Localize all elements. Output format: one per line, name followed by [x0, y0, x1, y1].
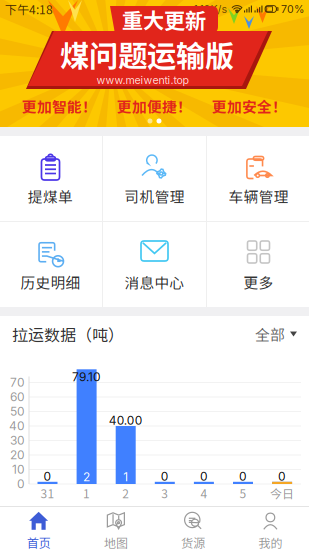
button[interactable]: 地图: [77, 506, 154, 550]
staticText: 40.00: [109, 413, 143, 428]
button[interactable]: 提煤单: [0, 136, 102, 221]
staticText: 31: [40, 484, 54, 502]
staticText: 4: [200, 484, 207, 502]
staticText: 全部: [255, 323, 285, 345]
staticText: 拉运数据（吨）: [12, 322, 124, 346]
staticText: 5: [239, 484, 246, 502]
button[interactable]: 我的: [232, 506, 309, 550]
staticText: 车辆管理: [228, 185, 288, 207]
button[interactable]: 历史明细: [0, 222, 102, 307]
staticText: 历史明细: [20, 271, 80, 293]
button[interactable]: 消息中心: [103, 222, 206, 307]
staticText: 3: [161, 484, 168, 502]
staticText: 我的: [258, 534, 282, 550]
staticText: 30: [10, 433, 25, 448]
staticText: 2: [83, 470, 90, 484]
button[interactable]: 更多: [207, 222, 309, 307]
staticText: 40: [9, 419, 25, 433]
staticText: 更加安全！: [212, 95, 287, 117]
staticText: 0: [43, 469, 51, 483]
staticText: 煤问题运输版: [60, 33, 234, 75]
staticText: 1: [83, 484, 90, 502]
staticText: 消息中心: [124, 271, 184, 293]
staticText: 重大更新: [122, 4, 206, 35]
staticText: 79.10: [72, 370, 101, 384]
staticText: 0: [161, 469, 169, 483]
staticText: 货源: [181, 534, 205, 550]
button[interactable]: 司机管理: [103, 136, 206, 221]
staticText: 20: [10, 448, 25, 462]
staticText: 司机管理: [124, 185, 184, 207]
staticText: 70: [10, 375, 25, 390]
staticText: 0: [17, 477, 25, 491]
staticText: 10: [12, 462, 25, 477]
staticText: 2: [122, 484, 129, 502]
staticText: 70%: [281, 2, 304, 15]
staticText: 下午4:18: [5, 0, 53, 18]
staticText: 今日: [270, 484, 294, 502]
staticText: 更加便捷！: [117, 95, 192, 117]
staticText: 0: [200, 469, 208, 483]
button[interactable]: 车辆管理: [207, 136, 309, 221]
button[interactable]: 全部: [255, 315, 297, 353]
staticText: 50: [10, 404, 25, 419]
button[interactable]: 首页: [0, 506, 77, 550]
staticText: 更加智能！: [22, 95, 97, 117]
staticText: 提煤单: [28, 185, 73, 207]
staticText: 60: [10, 390, 25, 404]
staticText: www.meiwenti.top: [96, 73, 189, 86]
staticText: 更多: [243, 271, 273, 293]
staticText: 地图: [104, 534, 128, 550]
staticText: 首页: [27, 534, 51, 550]
staticText: 0: [239, 469, 247, 483]
staticText: 1.10K/s: [193, 2, 227, 15]
button[interactable]: 货源: [154, 506, 232, 550]
staticText: 0: [278, 469, 286, 483]
staticText: 1: [123, 470, 128, 484]
